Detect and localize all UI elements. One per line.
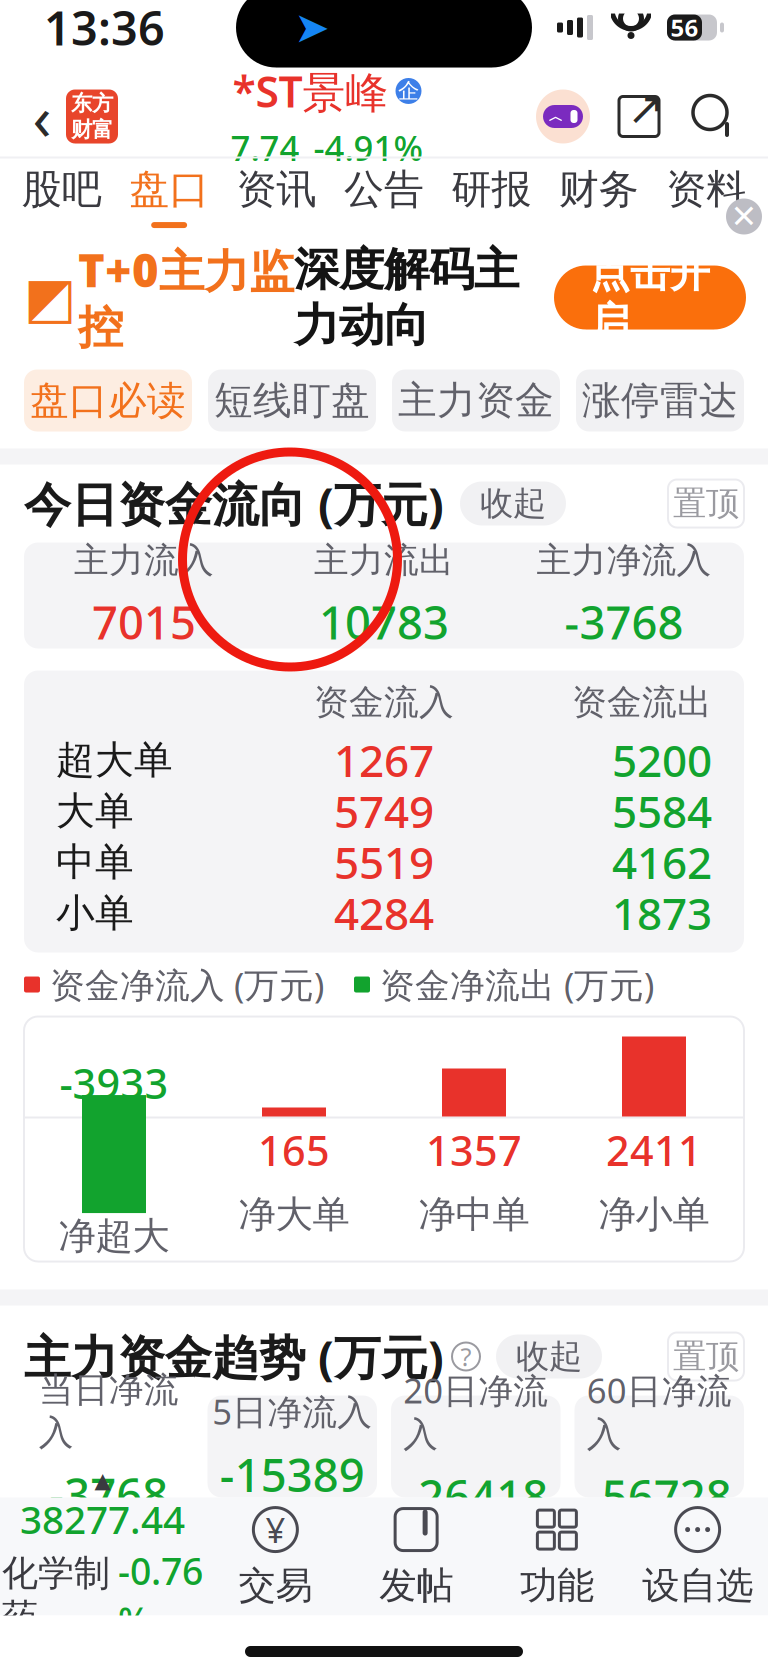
staticText: -26418 xyxy=(403,1466,548,1526)
button[interactable]: 涨停雷达 xyxy=(576,369,744,431)
staticText: 资讯 xyxy=(237,165,317,214)
staticText: 主力流入 xyxy=(74,539,214,582)
button[interactable]: 发帖 xyxy=(346,1501,487,1611)
staticText: 短线盯盘 xyxy=(214,377,370,424)
staticText: 2411 xyxy=(606,1122,702,1177)
staticText: 中单 xyxy=(56,838,134,886)
staticText: 小单 xyxy=(56,889,134,937)
staticText: ‹ xyxy=(32,76,51,157)
staticText: 点击开启 xyxy=(590,248,710,347)
button[interactable]: 研报 xyxy=(438,158,545,242)
button[interactable]: 60日净流入 xyxy=(574,1395,744,1497)
button[interactable]: 置顶 xyxy=(668,1332,744,1380)
staticText: 资金净流出 (万元) xyxy=(380,961,654,1007)
button[interactable]: 5日净流入 xyxy=(207,1395,377,1497)
staticText: ↗ xyxy=(627,83,665,134)
button[interactable]: 股吧 xyxy=(8,158,115,242)
staticText: 4162 xyxy=(612,833,712,891)
button[interactable]: 财务 xyxy=(545,158,652,242)
staticText: ¥ xyxy=(265,1507,285,1553)
staticText: 净超大 xyxy=(58,1213,169,1259)
button[interactable]: 资料 xyxy=(653,158,760,242)
staticText: 盘口 xyxy=(129,165,209,214)
staticText: 5519 xyxy=(334,833,434,891)
staticText: 企 xyxy=(398,78,419,104)
staticText: -3768 xyxy=(564,592,683,652)
staticText: -3933 xyxy=(59,1056,168,1110)
staticText: 资料 xyxy=(666,165,746,214)
staticText: 主力资金 xyxy=(398,377,554,424)
staticText: 1267 xyxy=(334,731,434,789)
staticText: 13:36 xyxy=(44,0,165,58)
staticText: ? xyxy=(460,1340,471,1373)
staticText: 当日净流入 xyxy=(39,1369,179,1454)
staticText: 盘口必读 xyxy=(30,377,186,424)
button[interactable]: 置顶 xyxy=(668,479,744,527)
staticText: ✕ xyxy=(730,198,757,235)
staticText: T+0主力监控 xyxy=(78,239,294,355)
staticText: 深度解码主力动向 xyxy=(294,242,519,353)
button[interactable]: 智能助手 xyxy=(536,89,590,143)
staticText: 1357 xyxy=(426,1122,522,1177)
button[interactable]: 当日净流入 xyxy=(24,1395,193,1497)
staticText: 涨停雷达 xyxy=(582,377,738,424)
button[interactable]: 主力资金 xyxy=(392,369,560,431)
staticText: 5584 xyxy=(612,782,712,840)
staticText: 净小单 xyxy=(598,1192,709,1237)
button[interactable]: 收起 xyxy=(460,481,566,525)
staticText: 今日资金流向 (万元) xyxy=(24,472,444,534)
staticText: -3768 xyxy=(49,1464,168,1524)
staticText: 东方 xyxy=(71,90,113,116)
staticText: 研报 xyxy=(451,165,531,214)
staticText: 7015 xyxy=(92,592,196,652)
staticText: *ST景峰 xyxy=(232,62,388,119)
staticText: 5日净流入 xyxy=(212,1388,372,1434)
staticText: 主力资金趋势 (万元) xyxy=(24,1325,444,1387)
staticText: 收起 xyxy=(480,483,546,524)
button[interactable]: 关闭广告 xyxy=(726,198,762,234)
button[interactable]: 公告 xyxy=(330,158,438,242)
staticText: 化学制药 xyxy=(2,1551,110,1639)
staticText: ◩ xyxy=(23,266,76,329)
staticText: 公告 xyxy=(344,165,424,214)
staticText: 38277.44 xyxy=(20,1493,185,1545)
staticText: 净中单 xyxy=(418,1192,529,1237)
staticText: 收起 xyxy=(516,1336,582,1377)
button[interactable]: 收起 xyxy=(496,1334,602,1378)
staticText: ︿ xyxy=(548,107,563,125)
button[interactable]: 搜索 xyxy=(688,91,738,141)
staticText: 置顶 xyxy=(673,483,739,524)
staticText: 1873 xyxy=(612,884,712,942)
staticText: 置顶 xyxy=(673,1336,739,1377)
staticText: 净大单 xyxy=(238,1192,349,1237)
staticText: 财富 xyxy=(71,116,113,143)
staticText: 4284 xyxy=(334,884,434,942)
staticText: -15389 xyxy=(220,1444,365,1505)
button[interactable]: 盘口 xyxy=(115,158,223,242)
staticText: 股吧 xyxy=(22,165,102,214)
button[interactable]: 短线盯盘 xyxy=(208,369,376,431)
button[interactable]: 资讯 xyxy=(223,158,330,242)
button[interactable]: 点击开启 xyxy=(554,265,746,329)
button[interactable]: 分享 xyxy=(614,91,664,141)
button[interactable]: 东方财富 xyxy=(66,89,118,143)
staticText: 资金流入 xyxy=(314,681,454,724)
staticText: -0.76% xyxy=(118,1546,203,1645)
staticText: 主力净流入 xyxy=(536,539,711,582)
staticText: 功能 xyxy=(520,1563,594,1608)
staticText: ▲ xyxy=(94,1468,110,1492)
button[interactable]: 20日净流入 xyxy=(391,1395,560,1497)
button[interactable]: 功能 xyxy=(486,1501,627,1611)
staticText: 5200 xyxy=(612,731,712,789)
staticText: 资金净流入 (万元) xyxy=(50,961,324,1007)
staticText: 财务 xyxy=(559,165,639,214)
staticText: 60日净流入 xyxy=(587,1367,732,1456)
button[interactable]: 盘口必读 xyxy=(24,369,192,431)
button[interactable]: 设自选 xyxy=(627,1501,768,1611)
button[interactable]: ¥ xyxy=(205,1501,346,1611)
staticText: 发帖 xyxy=(379,1563,453,1608)
staticText: 7.74 xyxy=(230,124,299,170)
button[interactable]: 返回 xyxy=(18,80,66,152)
staticText: ➤ xyxy=(294,3,330,52)
staticText: 设自选 xyxy=(642,1563,753,1608)
